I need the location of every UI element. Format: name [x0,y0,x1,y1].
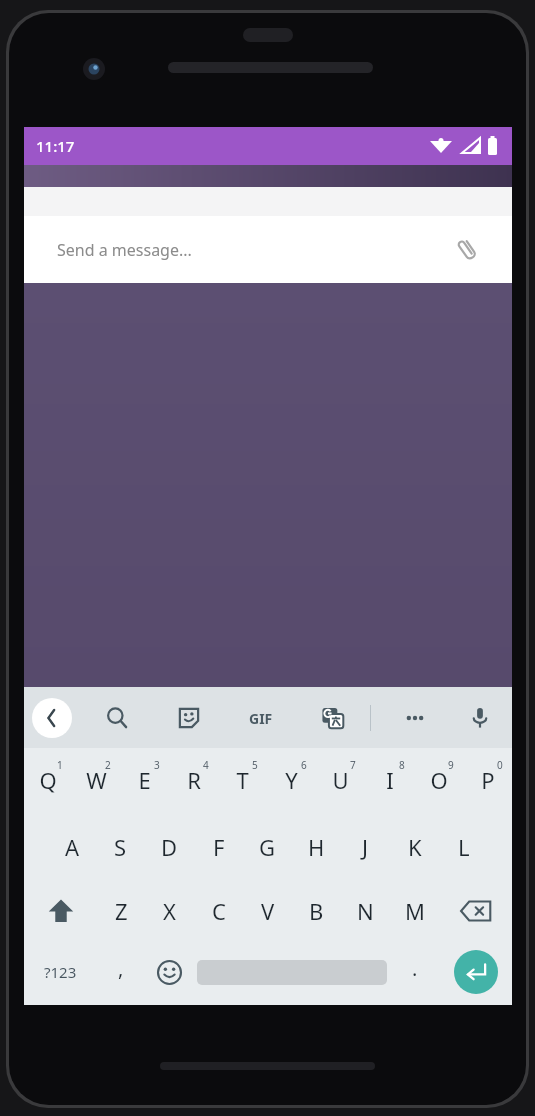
button[interactable]: P [463,748,512,815]
button[interactable]: M [390,879,439,943]
staticText: 8 [399,758,405,772]
button[interactable]: H [292,815,341,879]
button[interactable]: X [145,879,194,943]
staticText: T [236,765,249,795]
staticText: H [308,832,325,862]
button[interactable]: Shift [24,879,97,943]
button[interactable]: Stickers [169,698,209,738]
button[interactable]: , [97,943,145,1001]
button[interactable] [193,943,391,1001]
staticText: B [309,896,324,926]
staticText: U [332,765,349,795]
staticText: 6 [301,758,307,772]
button[interactable]: C [194,879,243,943]
staticText: Y [285,765,298,795]
button[interactable]: S [96,815,145,879]
staticText: GIF [249,709,273,728]
button[interactable]: More options [395,698,435,738]
button[interactable]: Backspace [439,879,512,943]
button[interactable]: O [414,748,463,815]
staticText: O [430,765,448,795]
button[interactable]: N [341,879,390,943]
button[interactable]: Attach file [448,230,488,270]
staticText: M [405,896,425,926]
button[interactable]: Q [24,748,72,815]
staticText: V [261,896,275,926]
button[interactable]: F [194,815,243,879]
staticText: J [362,832,369,862]
staticText: Z [115,896,128,926]
staticText: 4 [203,758,209,772]
staticText: K [408,832,422,862]
staticText: 0 [497,758,503,772]
staticText: F [213,832,225,862]
button[interactable]: Search [97,698,137,738]
button[interactable]: Back [32,698,72,738]
staticText: Send a message... [57,239,192,261]
button[interactable]: ?123 [24,943,97,1001]
staticText: E [138,765,151,795]
button[interactable]: B [292,879,341,943]
staticText: 7 [350,758,356,772]
staticText: N [357,896,374,926]
button[interactable]: G [243,815,292,879]
staticText: A [65,832,80,862]
button[interactable]: GIF [241,698,281,738]
staticText: ?123 [44,962,77,982]
button[interactable]: Z [97,879,145,943]
button[interactable]: D [145,815,194,879]
button[interactable]: K [390,815,439,879]
staticText: L [458,832,470,862]
staticText: W [86,765,107,795]
staticText: P [481,765,495,795]
button[interactable]: R [169,748,218,815]
staticText: 1 [57,758,63,772]
staticText: C [212,896,226,926]
staticText: G [259,832,276,862]
button[interactable]: Translate [313,698,353,738]
staticText: R [187,765,201,795]
button[interactable]: Voice input [460,698,500,738]
button[interactable]: U [316,748,365,815]
staticText: 2 [105,758,111,772]
button[interactable]: E [120,748,169,815]
staticText: X [163,896,176,926]
staticText: . [412,955,418,982]
staticText: 3 [154,758,160,772]
button[interactable]: A [48,815,96,879]
staticText: 11:17 [36,136,75,156]
button[interactable]: T [218,748,267,815]
button[interactable]: L [439,815,488,879]
button[interactable]: V [243,879,292,943]
staticText: I [386,765,394,795]
button[interactable]: Emoji [145,943,193,1001]
button[interactable]: I [365,748,414,815]
staticText: , [118,955,124,982]
staticText: Q [39,765,57,795]
staticText: 9 [448,758,454,772]
staticText: S [114,832,127,862]
button[interactable]: J [341,815,390,879]
button[interactable]: Enter [439,943,512,1001]
button[interactable]: . [391,943,439,1001]
button[interactable]: Y [267,748,316,815]
button[interactable]: W [72,748,120,815]
button[interactable]: Send a message... [24,216,512,283]
staticText: 5 [252,758,258,772]
staticText: D [161,832,178,862]
